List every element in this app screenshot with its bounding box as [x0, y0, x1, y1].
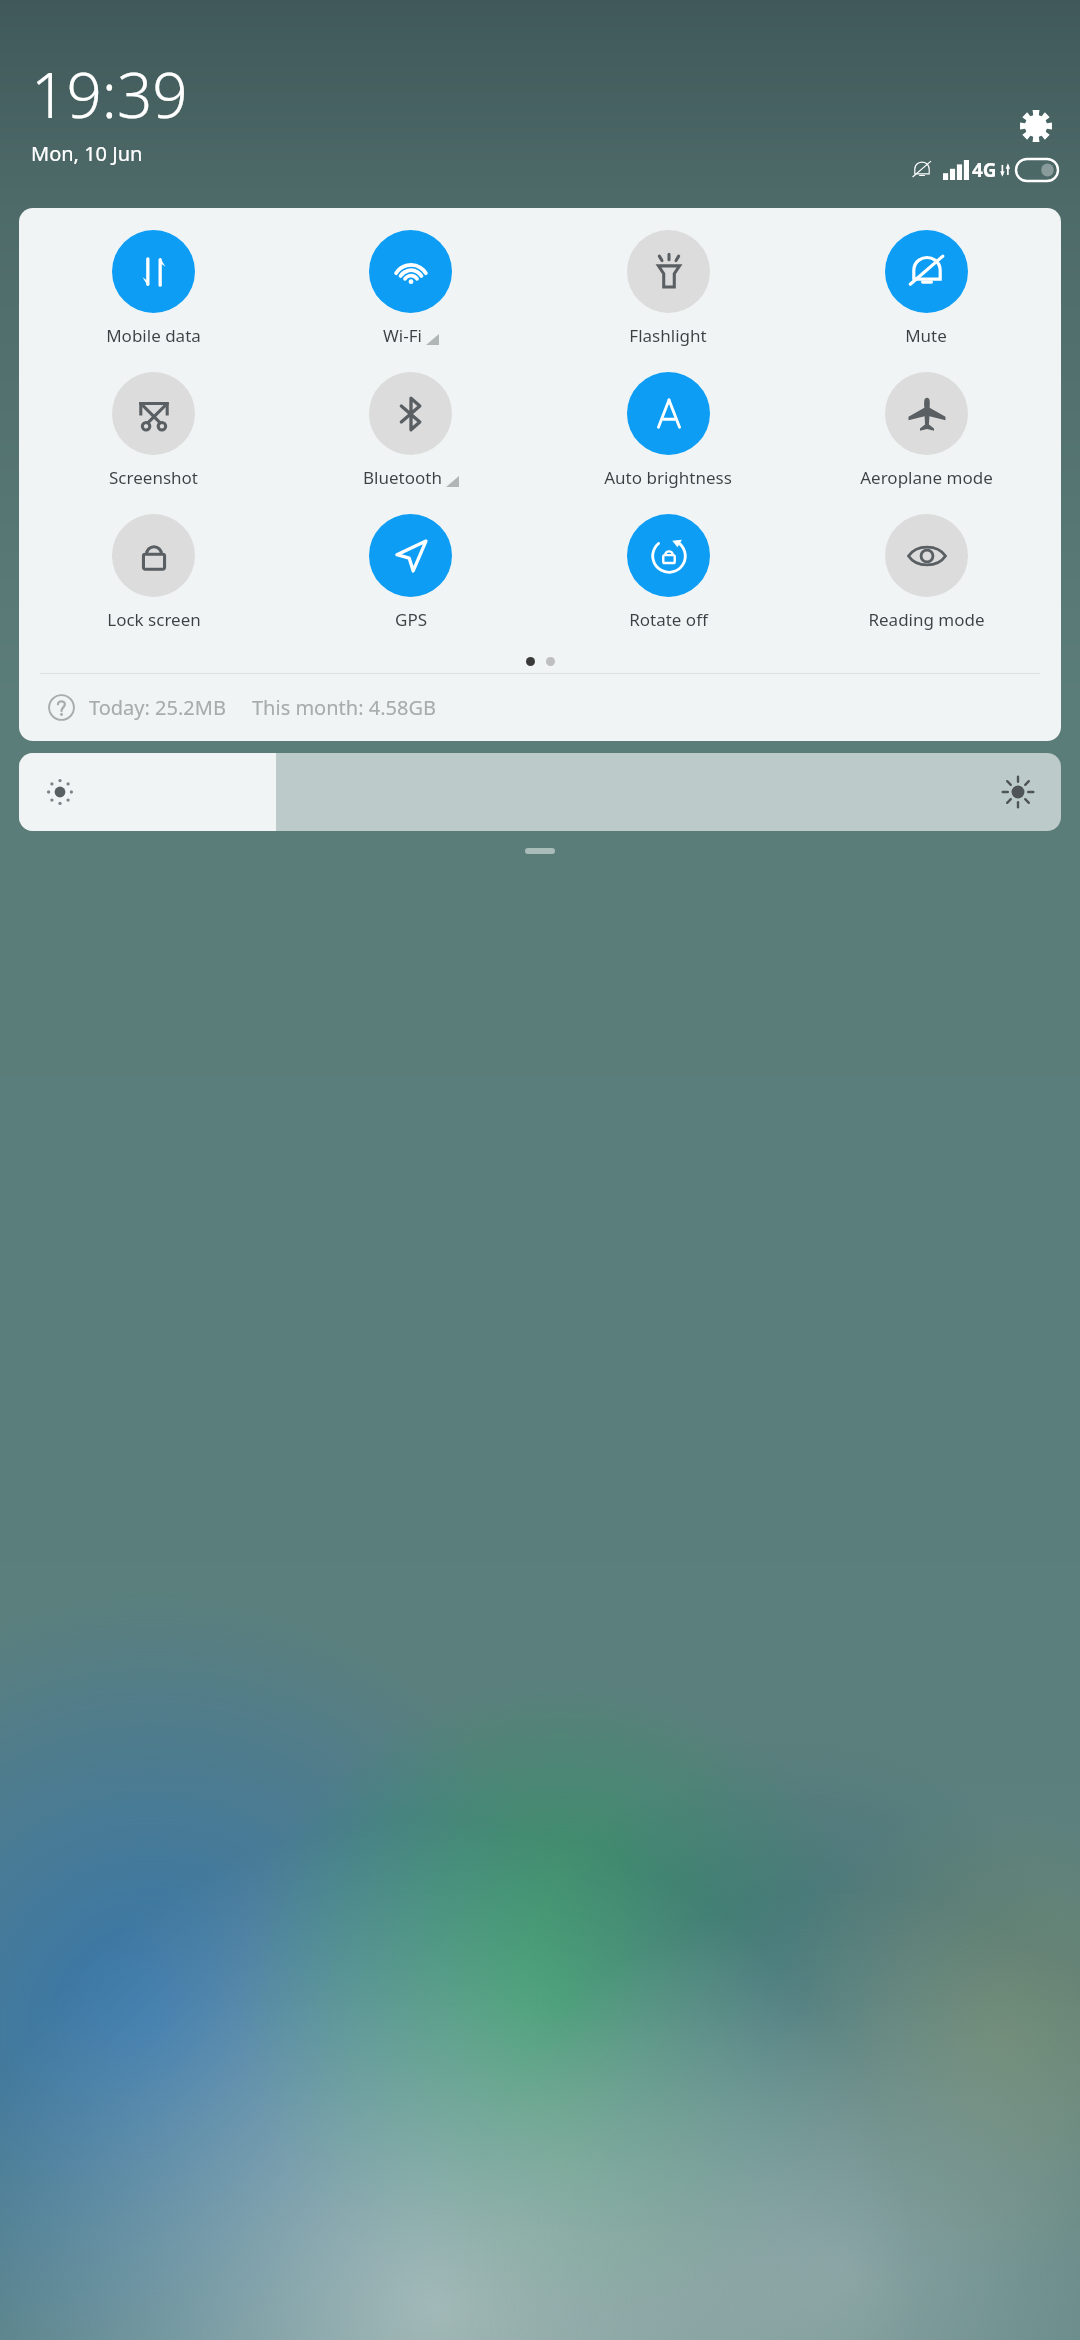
staticText: 4G — [972, 157, 997, 183]
button[interactable]: Brightness — [19, 753, 1061, 831]
button[interactable]: Mobile data — [25, 230, 282, 347]
button[interactable]: Bluetooth — [282, 372, 539, 489]
button[interactable]: Auto brightness — [539, 372, 797, 489]
staticText: Bluetooth — [363, 466, 442, 489]
button[interactable]: Rotate off — [539, 514, 797, 631]
button[interactable]: Wi-Fi — [282, 230, 539, 347]
staticText: Today: 25.2MB — [89, 694, 226, 721]
staticText: Auto brightness — [604, 466, 732, 489]
button[interactable]: Lock screen — [25, 514, 282, 631]
button[interactable]: Screenshot — [25, 372, 282, 489]
staticText: Reading mode — [868, 608, 985, 631]
button[interactable]: GPS — [282, 514, 539, 631]
staticText: Mobile data — [106, 324, 201, 347]
button[interactable]: Reading mode — [797, 514, 1055, 631]
button[interactable]: Today: 25.2MB — [19, 692, 1061, 741]
button[interactable]: Settings — [1014, 104, 1058, 148]
staticText: Aeroplane mode — [860, 466, 993, 489]
staticText: Mute — [905, 324, 947, 347]
staticText: Wi-Fi — [383, 324, 422, 347]
staticText: Mon, 10 Jun — [31, 140, 143, 167]
staticText: Lock screen — [107, 608, 201, 631]
staticText: Screenshot — [109, 466, 198, 489]
staticText: Rotate off — [629, 608, 708, 631]
staticText: Flashlight — [629, 324, 707, 347]
staticText: 19:39 — [31, 52, 188, 136]
staticText: This month: 4.58GB — [252, 694, 436, 721]
button[interactable]: Flashlight — [539, 230, 797, 347]
button[interactable]: Aeroplane mode — [797, 372, 1055, 489]
staticText: GPS — [395, 608, 427, 631]
button[interactable]: Mute — [797, 230, 1055, 347]
